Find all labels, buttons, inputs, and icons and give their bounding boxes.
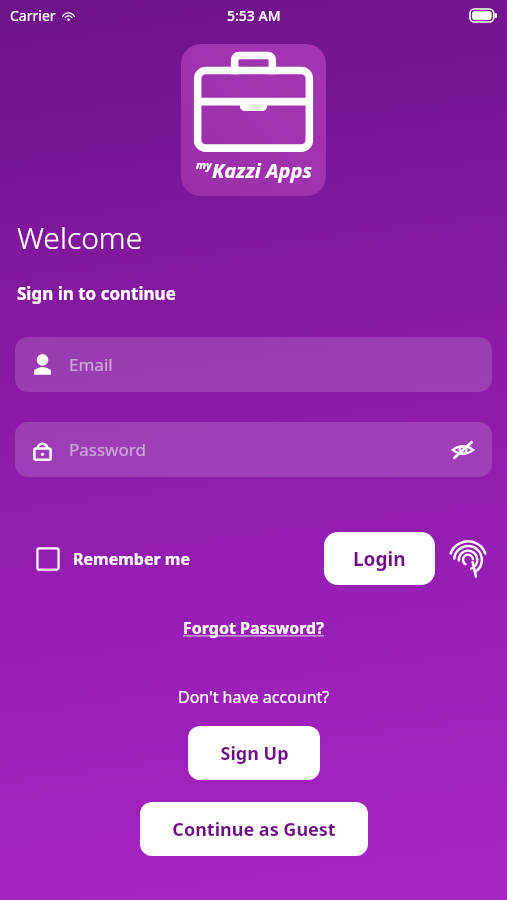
staticText: Carrier: [10, 6, 56, 25]
staticText: Remember me: [73, 548, 190, 570]
button[interactable]: Password: [15, 422, 492, 477]
staticText: Password: [69, 438, 146, 461]
button[interactable]: Email: [15, 337, 492, 392]
staticText: Email: [69, 353, 113, 376]
staticText: Login: [353, 546, 406, 572]
button[interactable]: Remember me: [36, 541, 190, 577]
staticText: Continue as Guest: [172, 817, 336, 842]
staticText: 5:53 AM: [227, 6, 281, 25]
button[interactable]: Forgot Password?: [177, 614, 330, 642]
button[interactable]: Show password: [448, 435, 478, 465]
staticText: Sign in to continue: [17, 282, 176, 305]
staticText: Kazzi Apps: [212, 157, 312, 184]
button[interactable]: Login with fingerprint: [445, 536, 491, 582]
button[interactable]: Sign Up: [188, 726, 320, 780]
staticText: Welcome: [17, 217, 143, 258]
staticText: Sign Up: [220, 741, 289, 766]
staticText: Don't have account?: [178, 686, 330, 708]
button[interactable]: Login: [324, 532, 435, 585]
staticText: my: [196, 157, 212, 172]
button[interactable]: Continue as Guest: [140, 802, 368, 856]
staticText: Forgot Password?: [183, 617, 324, 639]
